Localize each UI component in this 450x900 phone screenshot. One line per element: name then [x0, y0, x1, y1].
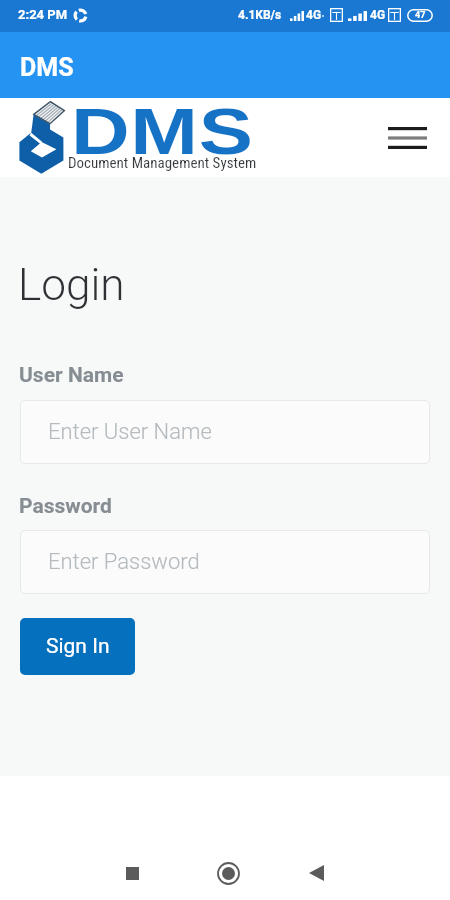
staticText: Login — [18, 258, 125, 311]
staticText: 2:24 PM — [18, 7, 68, 22]
button[interactable]: Back — [294, 851, 338, 895]
staticText: Sign In — [46, 634, 110, 659]
button[interactable]: Home — [206, 851, 250, 895]
staticText: User Name — [19, 363, 124, 388]
staticText: DMS — [20, 53, 74, 82]
staticText: 4G — [370, 8, 386, 22]
staticText: DMS — [71, 96, 254, 168]
staticText: 4G — [306, 8, 322, 22]
staticText: 4.1KB/s — [238, 8, 282, 22]
button[interactable]: Open navigation menu — [383, 114, 431, 162]
staticText: Enter Password — [48, 549, 200, 575]
button[interactable]: Enter Password — [20, 530, 430, 594]
staticText: Document Management System — [68, 154, 257, 172]
button[interactable]: Sign In — [20, 618, 135, 675]
button[interactable]: Recent apps — [110, 851, 154, 895]
staticText: 47 — [415, 10, 426, 21]
button[interactable]: Enter User Name — [20, 400, 430, 464]
staticText: Enter User Name — [48, 419, 212, 445]
staticText: Password — [19, 494, 112, 519]
